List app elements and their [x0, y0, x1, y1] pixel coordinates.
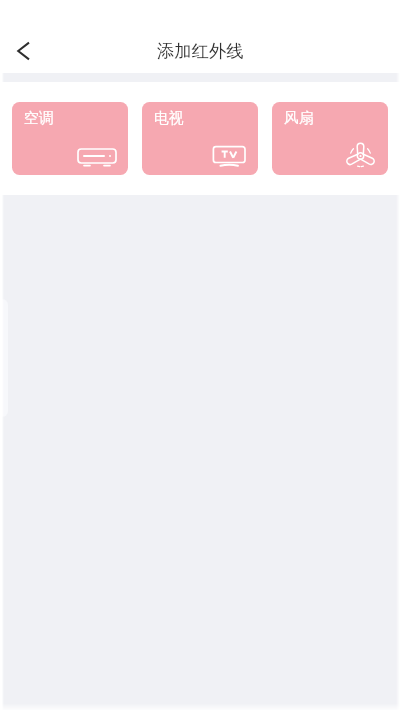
staticText: 空调: [24, 109, 54, 128]
button[interactable]: 空调: [12, 102, 128, 175]
button[interactable]: Back: [0, 28, 46, 74]
staticText: 添加红外线: [157, 40, 244, 62]
staticText: 风扇: [284, 109, 314, 128]
button[interactable]: 电视: [142, 102, 258, 175]
staticText: 电视: [154, 109, 184, 128]
button[interactable]: 风扇: [272, 102, 388, 175]
